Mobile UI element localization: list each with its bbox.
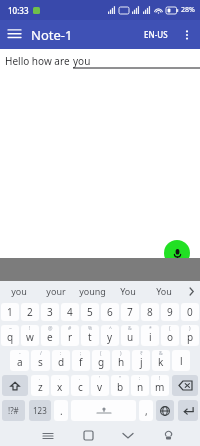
button[interactable]: 9	[161, 303, 179, 321]
button[interactable]: .	[71, 375, 89, 396]
staticText: x	[57, 380, 63, 394]
staticText: y	[107, 330, 113, 344]
staticText: your	[46, 285, 66, 297]
button[interactable]: you	[0, 281, 37, 301]
staticText: n	[137, 380, 144, 394]
button[interactable]: Switch input method	[148, 425, 188, 446]
button[interactable]: )	[181, 325, 199, 346]
button[interactable]: young	[74, 281, 110, 301]
button[interactable]: %	[81, 325, 99, 346]
staticText: (	[169, 325, 171, 332]
button[interactable]: Enter	[178, 400, 198, 421]
button[interactable]: !	[151, 375, 169, 396]
button[interactable]: Change language	[156, 400, 174, 421]
button[interactable]: *	[141, 325, 159, 346]
button[interactable]: Hide keyboard	[108, 425, 148, 446]
staticText: !	[159, 375, 161, 382]
button[interactable]: )	[112, 350, 130, 371]
staticText: 1	[7, 305, 13, 319]
button[interactable]: 8	[141, 303, 159, 321]
button[interactable]: ;	[72, 350, 90, 371]
button[interactable]: -	[10, 350, 29, 371]
staticText: You	[156, 285, 172, 297]
button[interactable]: You	[146, 281, 182, 301]
button[interactable]: l	[172, 350, 190, 371]
button[interactable]: 4	[61, 303, 79, 321]
staticText: v	[97, 380, 103, 394]
staticText: w	[26, 330, 34, 344]
staticText: f	[79, 355, 83, 369]
staticText: a	[17, 355, 23, 369]
button[interactable]: &	[152, 350, 170, 371]
button[interactable]: Shift	[2, 375, 28, 396]
button[interactable]: '	[91, 375, 109, 396]
button[interactable]: 123	[29, 400, 51, 421]
button[interactable]: !?#	[2, 400, 25, 421]
button[interactable]: 0	[181, 303, 199, 321]
staticText: )	[189, 325, 191, 332]
button[interactable]: :	[52, 350, 70, 371]
button[interactable]: :	[131, 375, 149, 396]
staticText: /	[40, 350, 42, 357]
staticText: :	[139, 375, 141, 382]
staticText: &	[159, 350, 163, 357]
button[interactable]: You	[110, 281, 146, 301]
button[interactable]: !	[21, 325, 39, 346]
staticText: You	[120, 285, 136, 297]
staticText: &	[128, 325, 132, 332]
button[interactable]: 3	[41, 303, 59, 321]
staticText: i	[149, 330, 152, 344]
button[interactable]: ~	[1, 325, 19, 346]
staticText: !	[29, 325, 31, 332]
button[interactable]: 5	[81, 303, 99, 321]
button[interactable]: your	[37, 281, 74, 301]
staticText: !?#	[8, 405, 19, 416]
staticText: 6	[107, 305, 113, 319]
staticText: )	[120, 350, 122, 357]
button[interactable]: EN-US	[138, 23, 174, 46]
button[interactable]: &	[121, 325, 139, 346]
staticText: '	[99, 375, 101, 382]
button[interactable]: /	[31, 350, 50, 371]
button[interactable]: 7	[121, 303, 139, 321]
button[interactable]: 2	[21, 303, 39, 321]
staticText: .	[59, 375, 61, 382]
staticText: o	[167, 330, 174, 344]
staticText: u	[127, 330, 134, 344]
button[interactable]: (	[92, 350, 110, 371]
button[interactable]: ,	[139, 400, 153, 421]
staticText: 9	[167, 305, 173, 319]
staticText: b	[117, 380, 124, 394]
button[interactable]: .	[54, 400, 68, 421]
button[interactable]: #	[61, 325, 79, 346]
button[interactable]: (	[161, 325, 179, 346]
button[interactable]: ^	[101, 325, 119, 346]
button[interactable]: 6	[101, 303, 119, 321]
button[interactable]: Home	[68, 425, 108, 446]
staticText: @	[48, 325, 53, 332]
button[interactable]: Voice input	[164, 240, 190, 266]
staticText: %	[88, 325, 93, 332]
button[interactable]: .	[31, 375, 49, 396]
button[interactable]: Space	[71, 400, 136, 421]
button[interactable]: Backspace	[172, 375, 198, 396]
staticText: "	[119, 375, 122, 382]
staticText: r	[68, 330, 73, 344]
button[interactable]: ₹	[132, 350, 150, 371]
staticText: .	[39, 375, 41, 382]
staticText: k	[158, 355, 164, 369]
staticText: young	[79, 285, 106, 297]
staticText: h	[118, 355, 125, 369]
staticText: (	[100, 350, 102, 357]
button[interactable]: More options	[174, 22, 200, 48]
staticText: p	[187, 330, 194, 344]
staticText: :	[60, 350, 62, 357]
button[interactable]: More suggestions	[182, 281, 200, 301]
button[interactable]: "	[111, 375, 129, 396]
button[interactable]: 1	[1, 303, 19, 321]
button[interactable]: .	[51, 375, 69, 396]
button[interactable]: @	[41, 325, 59, 346]
staticText: you	[73, 54, 91, 68]
button[interactable]: Recents	[28, 425, 68, 446]
button[interactable]: Open navigation drawer	[0, 20, 29, 49]
